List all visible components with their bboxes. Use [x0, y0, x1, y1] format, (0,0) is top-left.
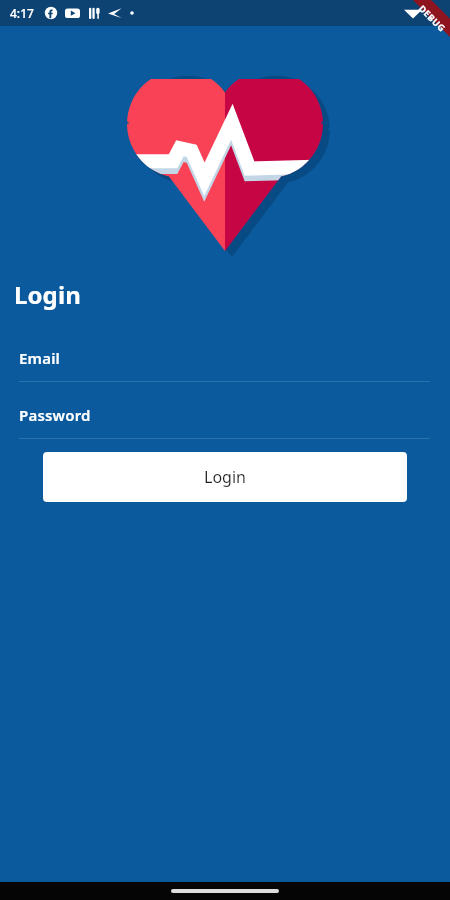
staticText: Login: [204, 466, 246, 488]
staticText: Email: [19, 348, 61, 368]
button[interactable]: Login: [43, 452, 407, 502]
staticText: Login: [14, 278, 81, 311]
staticText: DEBUG: [417, 2, 448, 34]
button[interactable]: Email: [0, 348, 450, 382]
staticText: 4:17: [10, 5, 34, 21]
staticText: Password: [19, 405, 91, 425]
button[interactable]: Password: [0, 405, 450, 439]
